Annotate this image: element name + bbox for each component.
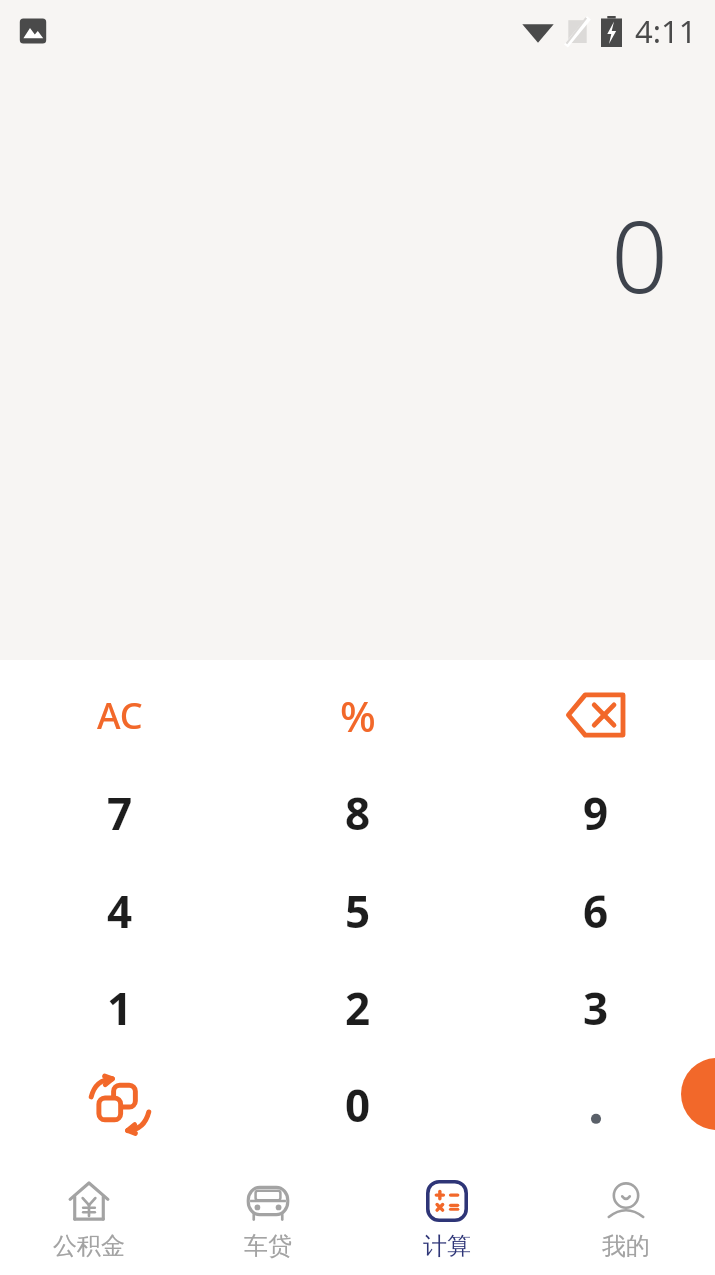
button[interactable]: Convert units — [0, 1056, 239, 1153]
staticText: 2 — [345, 978, 371, 1038]
button[interactable]: 9 — [477, 764, 715, 862]
staticText: 0 — [611, 186, 669, 322]
staticText: 公积金 — [53, 1231, 125, 1261]
button[interactable]: % — [239, 666, 477, 764]
button[interactable]: Decimal point — [477, 1056, 715, 1153]
staticText: 4:11 — [635, 10, 697, 52]
button[interactable]: 8 — [239, 764, 477, 862]
button[interactable]: 7 — [0, 764, 239, 862]
button[interactable]: 我的 — [536, 1163, 715, 1275]
staticText: 我的 — [602, 1231, 650, 1261]
button[interactable]: 6 — [477, 862, 715, 959]
button[interactable]: 5 — [239, 862, 477, 959]
staticText: 9 — [583, 783, 609, 843]
staticText: 计算 — [423, 1231, 471, 1261]
button[interactable]: Equals — [681, 1058, 715, 1130]
button[interactable]: 公积金 — [0, 1163, 178, 1275]
button[interactable]: 车贷 — [178, 1163, 357, 1275]
staticText: 1 — [107, 978, 133, 1038]
staticText: 车贷 — [244, 1231, 292, 1261]
staticText: AC — [97, 691, 143, 740]
staticText: 3 — [583, 978, 609, 1038]
other: Screenshot — [18, 16, 48, 46]
button[interactable]: 2 — [239, 959, 477, 1056]
staticText: 0 — [345, 1075, 371, 1135]
button[interactable]: 4 — [0, 862, 239, 959]
staticText: 8 — [345, 783, 371, 843]
staticText: 5 — [345, 881, 371, 941]
button[interactable]: 计算 — [357, 1163, 536, 1275]
staticText: 7 — [107, 783, 133, 843]
button[interactable]: Backspace — [477, 666, 715, 764]
button[interactable]: 3 — [477, 959, 715, 1056]
staticText: 6 — [583, 881, 609, 941]
staticText: % — [340, 687, 376, 744]
staticText: 4 — [107, 881, 133, 941]
button[interactable]: AC — [0, 666, 239, 764]
button[interactable]: 0 — [239, 1056, 477, 1153]
button[interactable]: 1 — [0, 959, 239, 1056]
